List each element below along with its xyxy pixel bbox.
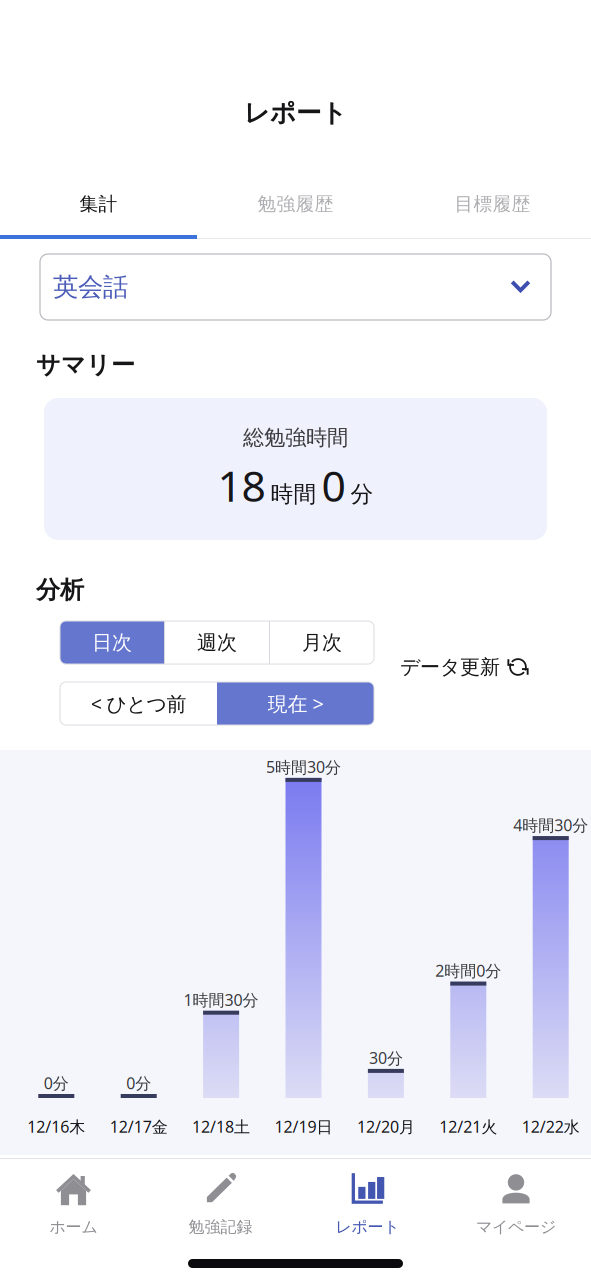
staticText: サマリー [36,350,135,380]
button[interactable]: 日次 [60,621,164,664]
staticText: 18 [217,457,265,513]
staticText: < ひとつ前 [90,690,186,717]
staticText: レポート [335,1217,399,1237]
staticText: マイページ [476,1217,556,1237]
staticText: 2時間0分 [435,960,501,981]
staticText: 12/20月 [357,1116,415,1137]
staticText: 日次 [92,630,132,655]
staticText: 4時間30分 [513,814,588,836]
staticText: 現在 > [267,690,323,717]
button[interactable]: 月次 [270,621,374,664]
button[interactable]: 目標履歴 [394,191,591,239]
staticText: 英会話 [53,271,128,302]
staticText: 目標履歴 [454,192,530,215]
button[interactable]: 週次 [165,621,269,664]
staticText: 総勉強時間 [243,425,348,451]
button[interactable]: 現在 > [217,682,374,725]
staticText: 0 [321,457,345,513]
staticText: 0分 [44,1072,69,1094]
button[interactable]: データ更新 [374,621,529,687]
staticText: ホーム [49,1217,97,1237]
button[interactable]: 勉強記録 [147,1159,294,1247]
staticText: 12/18土 [192,1116,250,1137]
button[interactable]: レポート [294,1159,441,1247]
staticText: 30分 [369,1047,403,1068]
staticText: 集計 [79,192,117,215]
staticText: 時間 [270,480,316,508]
staticText: 12/21火 [439,1116,497,1137]
staticText: 分析 [36,575,84,605]
staticText: 12/22水 [522,1116,580,1137]
button[interactable]: マイページ [441,1159,591,1247]
button[interactable]: 英会話 [40,254,551,320]
staticText: 0分 [126,1072,151,1094]
button[interactable]: 集計 [0,191,197,239]
staticText: 分 [350,480,373,508]
staticText: 12/17金 [110,1116,168,1137]
staticText: 5時間30分 [266,756,341,777]
staticText: 12/19日 [274,1116,332,1137]
staticText: 1時間30分 [184,989,259,1010]
staticText: データ更新 [400,655,500,679]
button[interactable]: 勉強履歴 [197,191,394,239]
staticText: 週次 [197,630,237,655]
staticText: 勉強記録 [188,1217,252,1237]
staticText: 12/16木 [27,1116,85,1137]
button[interactable]: < ひとつ前 [60,682,217,725]
staticText: レポート [244,97,347,128]
button[interactable]: ホーム [0,1159,147,1247]
staticText: 月次 [302,630,342,655]
staticText: 勉強履歴 [257,192,333,215]
